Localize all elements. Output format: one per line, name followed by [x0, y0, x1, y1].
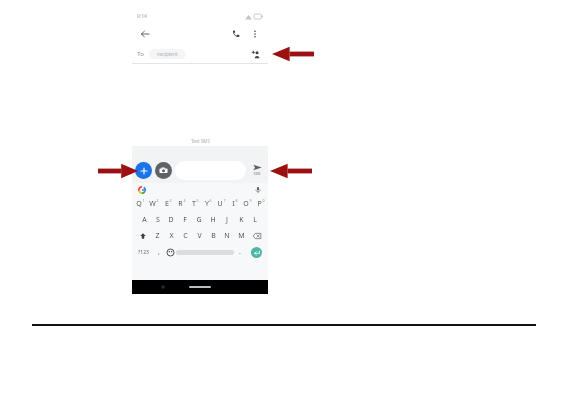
- button[interactable]: S: [151, 212, 164, 228]
- staticText: Text SMS: [191, 138, 210, 144]
- staticText: 9: [249, 198, 252, 203]
- staticText: 9:14: [137, 13, 147, 20]
- staticText: D: [168, 215, 174, 225]
- button[interactable]: Add attachment: [135, 162, 152, 179]
- staticText: V: [197, 231, 202, 241]
- staticText: T: [192, 199, 196, 209]
- staticText: M: [238, 231, 245, 241]
- button[interactable]: U: [215, 196, 228, 212]
- staticText: SMS: [253, 171, 261, 176]
- staticText: G: [196, 215, 202, 225]
- staticText: J: [226, 215, 228, 225]
- button[interactable]: R: [175, 196, 189, 212]
- staticText: F: [183, 215, 187, 225]
- staticText: Z: [155, 231, 160, 241]
- staticText: 1: [142, 198, 145, 203]
- button[interactable]: Voice input: [253, 185, 263, 195]
- staticText: 7: [223, 198, 226, 203]
- staticText: B: [211, 231, 216, 241]
- staticText: L: [253, 215, 257, 225]
- staticText: .: [239, 247, 241, 257]
- staticText: 8: [235, 198, 238, 203]
- staticText: 4: [183, 198, 186, 203]
- staticText: 5: [196, 198, 199, 203]
- button[interactable]: O: [241, 196, 254, 212]
- button[interactable]: P: [254, 196, 267, 212]
- button[interactable]: Back: [160, 284, 166, 290]
- button[interactable]: C: [178, 228, 192, 244]
- button[interactable]: [175, 161, 246, 180]
- staticText: R: [178, 199, 183, 209]
- staticText: ,: [158, 247, 160, 257]
- button[interactable]: Back: [137, 26, 153, 42]
- staticText: recipient: [157, 51, 178, 58]
- button[interactable]: Emoji: [164, 245, 176, 259]
- staticText: 3: [169, 198, 172, 203]
- button[interactable]: Z: [151, 228, 164, 244]
- button[interactable]: Shift: [134, 228, 151, 244]
- button[interactable]: ?123: [134, 245, 153, 259]
- button[interactable]: A: [138, 212, 151, 228]
- button[interactable]: E: [161, 196, 175, 212]
- button[interactable]: Call: [228, 26, 244, 42]
- staticText: U: [217, 199, 223, 209]
- button[interactable]: .: [234, 245, 246, 259]
- button[interactable]: Google search: [137, 185, 147, 195]
- button[interactable]: W: [147, 196, 161, 212]
- button[interactable]: More options: [247, 26, 263, 42]
- staticText: I: [232, 199, 235, 209]
- button[interactable]: X: [164, 228, 178, 244]
- button[interactable]: Add recipient: [249, 47, 263, 61]
- staticText: C: [183, 231, 188, 241]
- button[interactable]: G: [192, 212, 206, 228]
- button[interactable]: Backspace: [248, 228, 266, 244]
- staticText: 0: [262, 198, 265, 203]
- button[interactable]: recipient: [149, 49, 186, 59]
- button[interactable]: J: [220, 212, 234, 228]
- button[interactable]: T: [189, 196, 202, 212]
- staticText: N: [224, 231, 230, 241]
- staticText: E: [165, 199, 169, 209]
- staticText: W: [149, 199, 156, 209]
- button[interactable]: B: [206, 228, 220, 244]
- staticText: 2: [156, 198, 159, 203]
- button[interactable]: F: [178, 212, 192, 228]
- staticText: S: [156, 215, 160, 225]
- button[interactable]: ,: [153, 245, 164, 259]
- staticText: H: [210, 215, 216, 225]
- button[interactable]: I: [228, 196, 241, 212]
- staticText: A: [142, 215, 147, 225]
- button[interactable]: H: [206, 212, 220, 228]
- button[interactable]: D: [164, 212, 178, 228]
- button[interactable]: Home: [189, 286, 211, 288]
- staticText: O: [243, 199, 249, 209]
- button[interactable]: L: [248, 212, 262, 228]
- staticText: ?123: [138, 249, 149, 256]
- staticText: 6: [209, 198, 212, 203]
- staticText: Q: [136, 199, 142, 209]
- staticText: P: [257, 199, 262, 209]
- staticText: To: [137, 50, 144, 58]
- button[interactable]: K: [234, 212, 248, 228]
- button[interactable]: Y: [202, 196, 215, 212]
- button[interactable]: Q: [133, 196, 147, 212]
- button[interactable]: N: [220, 228, 234, 244]
- button[interactable]: V: [192, 228, 206, 244]
- staticText: K: [239, 215, 244, 225]
- staticText: Y: [205, 199, 209, 209]
- button[interactable]: M: [234, 228, 248, 244]
- button[interactable]: Send SMS: [249, 157, 265, 183]
- button[interactable]: Enter: [246, 245, 266, 259]
- button[interactable]: Camera: [155, 162, 172, 179]
- staticText: X: [169, 231, 174, 241]
